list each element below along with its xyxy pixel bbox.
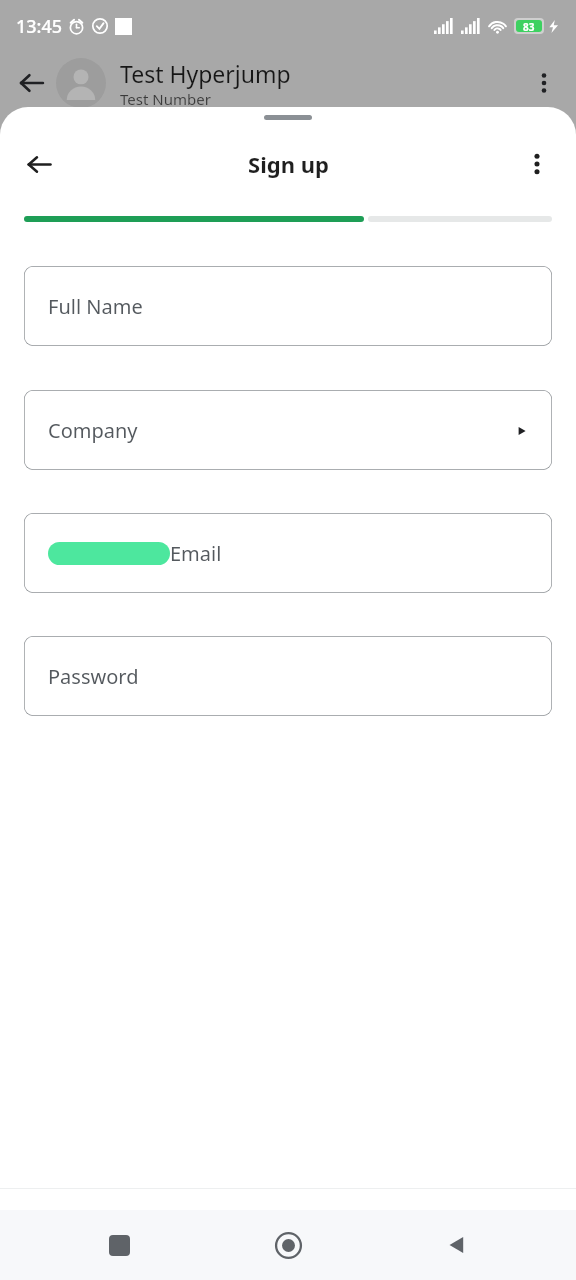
button[interactable]: More options <box>514 141 560 187</box>
staticText: Full Name <box>48 293 143 320</box>
button[interactable]: Password <box>24 636 552 716</box>
button[interactable]: Back <box>430 1218 484 1272</box>
button[interactable]: Full Name <box>24 266 552 346</box>
staticText: Test Number <box>120 89 211 109</box>
button[interactable]: Back <box>16 141 62 187</box>
button[interactable]: Company <box>24 390 552 470</box>
staticText: 83 <box>523 20 535 32</box>
staticText: Email <box>170 540 222 567</box>
staticText: Test Hyperjump <box>120 58 291 89</box>
staticText: Company <box>48 417 138 444</box>
staticText: Sign up <box>248 149 329 179</box>
staticText: Continue <box>247 1226 330 1252</box>
button[interactable]: More options <box>522 61 566 105</box>
staticText: 13:45 <box>16 14 63 39</box>
staticText: Password <box>48 663 139 690</box>
button[interactable]: Home <box>261 1218 315 1272</box>
button[interactable]: Continue <box>24 1210 552 1267</box>
button[interactable]: Email <box>24 513 552 593</box>
button[interactable]: Back <box>10 61 54 105</box>
button[interactable]: Recent apps <box>92 1218 146 1272</box>
